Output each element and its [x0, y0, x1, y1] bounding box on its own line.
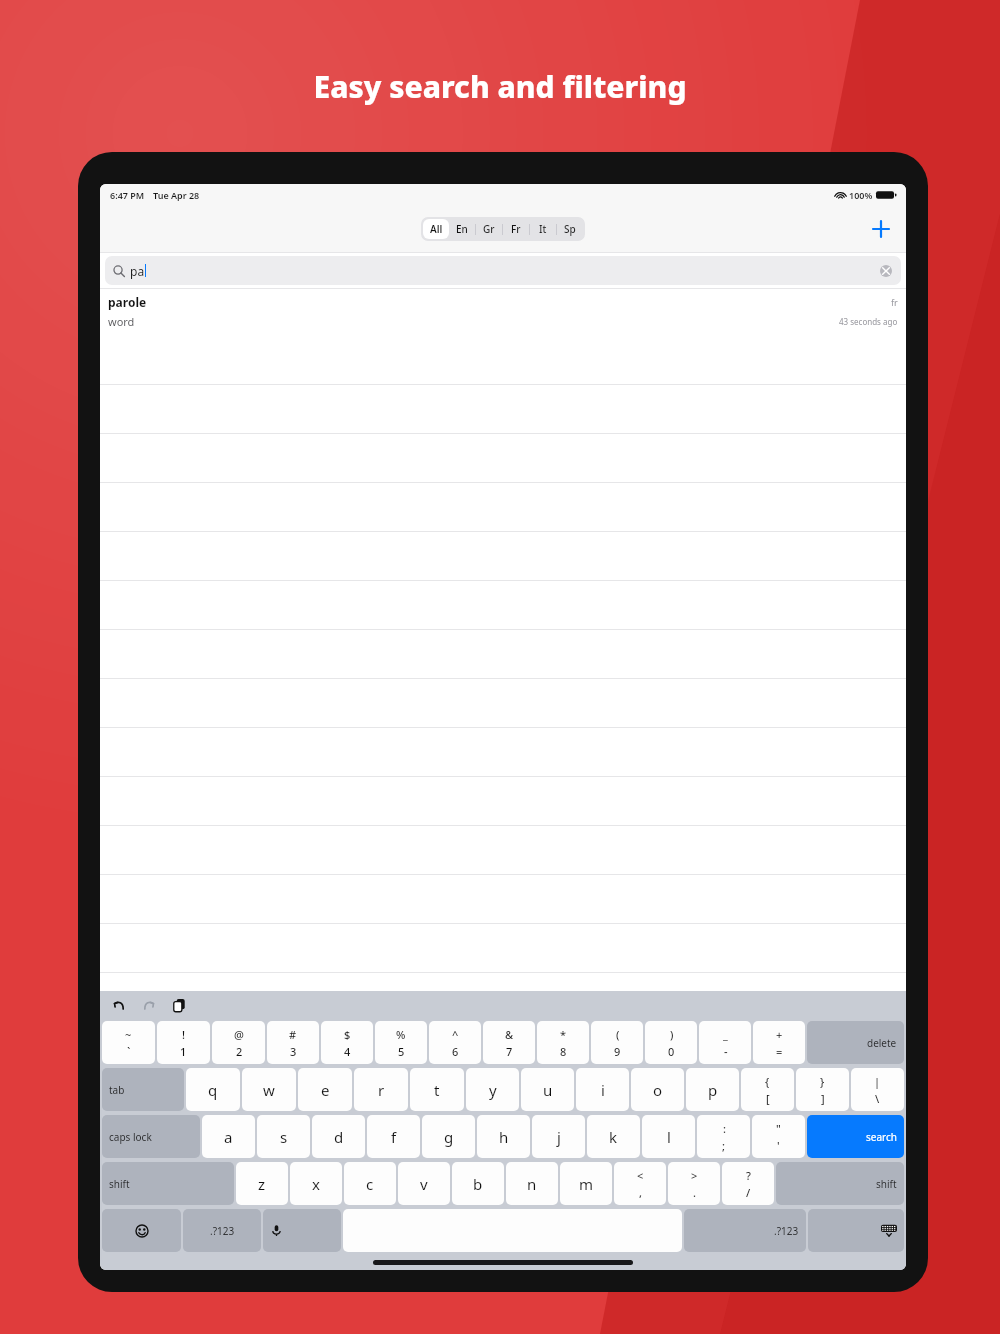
button[interactable]: < — [614, 1162, 666, 1205]
staticText: 3 — [290, 1044, 297, 1059]
button[interactable]: n — [506, 1162, 558, 1205]
button[interactable]: delete — [807, 1021, 904, 1064]
button[interactable]: q — [186, 1068, 240, 1111]
button[interactable]: ( — [591, 1021, 643, 1064]
staticText: search — [866, 1130, 897, 1144]
button[interactable]: Redo — [138, 994, 160, 1016]
staticText: shift — [109, 1177, 130, 1191]
staticText: m — [579, 1174, 594, 1194]
staticText: w — [263, 1080, 275, 1100]
button[interactable]: f — [367, 1115, 420, 1158]
button[interactable]: .?123 — [684, 1209, 806, 1252]
button[interactable]: kbd — [808, 1209, 904, 1252]
staticText: j — [557, 1127, 561, 1147]
button[interactable]: * — [537, 1021, 589, 1064]
button[interactable]: l — [642, 1115, 695, 1158]
button[interactable]: v — [398, 1162, 450, 1205]
button[interactable]: c — [344, 1162, 396, 1205]
staticText: " — [776, 1121, 781, 1136]
button[interactable]: r — [354, 1068, 408, 1111]
staticText: parole — [108, 294, 147, 310]
button[interactable]: shift — [102, 1162, 234, 1205]
button[interactable]: " — [752, 1115, 805, 1158]
button[interactable]: d — [312, 1115, 365, 1158]
button[interactable]: j — [532, 1115, 585, 1158]
button[interactable]: p — [686, 1068, 739, 1111]
button[interactable]: : — [697, 1115, 750, 1158]
staticText: ] — [821, 1091, 825, 1106]
staticText: En — [456, 222, 468, 236]
button[interactable]: > — [668, 1162, 720, 1205]
button[interactable]: parole — [100, 289, 906, 336]
button[interactable]: i — [576, 1068, 629, 1111]
button[interactable]: h — [477, 1115, 530, 1158]
button[interactable]: Add — [864, 212, 898, 246]
staticText: n — [527, 1174, 537, 1194]
button[interactable]: It — [530, 219, 556, 239]
staticText: word — [108, 314, 135, 329]
staticText: & — [505, 1027, 514, 1042]
button[interactable]: search — [807, 1115, 904, 1158]
button[interactable]: e — [298, 1068, 352, 1111]
staticText: 9 — [614, 1044, 621, 1059]
staticText: ~ — [125, 1027, 132, 1042]
button[interactable]: u — [521, 1068, 574, 1111]
button[interactable]: m — [560, 1162, 612, 1205]
button[interactable]: ! — [157, 1021, 210, 1064]
button[interactable]: x — [290, 1162, 342, 1205]
button[interactable]: # — [267, 1021, 319, 1064]
button[interactable]: shift — [776, 1162, 904, 1205]
button[interactable]: { — [741, 1068, 794, 1111]
button[interactable]: Fr — [503, 219, 529, 239]
staticText: tab — [109, 1083, 125, 1097]
button[interactable]: caps lock — [102, 1115, 200, 1158]
staticText: shift — [876, 1177, 897, 1191]
staticText: - — [724, 1044, 728, 1059]
button[interactable]: Sp — [557, 219, 583, 239]
button[interactable]: } — [796, 1068, 849, 1111]
button[interactable]: t — [410, 1068, 464, 1111]
button[interactable]: Gr — [476, 219, 502, 239]
button[interactable]: o — [631, 1068, 684, 1111]
button[interactable]: + — [753, 1021, 805, 1064]
button[interactable]: @ — [212, 1021, 265, 1064]
button[interactable]: Undo — [108, 994, 130, 1016]
button[interactable]: _ — [699, 1021, 751, 1064]
button[interactable]: ? — [722, 1162, 774, 1205]
staticText: > — [691, 1168, 698, 1183]
staticText: e — [321, 1080, 330, 1100]
button[interactable]: $ — [321, 1021, 373, 1064]
staticText: ! — [182, 1027, 186, 1042]
button[interactable]: w — [242, 1068, 296, 1111]
button[interactable]: y — [466, 1068, 519, 1111]
button[interactable]: s — [257, 1115, 310, 1158]
staticText: s — [280, 1127, 288, 1147]
button[interactable]: b — [452, 1162, 504, 1205]
button[interactable]: ~ — [102, 1021, 155, 1064]
button[interactable]: En — [449, 219, 475, 239]
staticText: 43 seconds ago — [839, 316, 898, 327]
staticText: b — [473, 1174, 483, 1194]
staticText: .?123 — [210, 1224, 235, 1238]
button[interactable]: % — [375, 1021, 427, 1064]
button[interactable]: emoji — [102, 1209, 181, 1252]
button[interactable]: mic — [263, 1209, 341, 1252]
button[interactable]: a — [202, 1115, 255, 1158]
button[interactable]: g — [422, 1115, 475, 1158]
staticText: Easy search and filtering — [0, 66, 1000, 107]
button[interactable]: pa — [105, 256, 901, 285]
button[interactable]: .?123 — [183, 1209, 261, 1252]
button[interactable]: z — [236, 1162, 288, 1205]
button[interactable]: tab — [102, 1068, 184, 1111]
button[interactable]: Paste — [168, 994, 190, 1016]
button[interactable]: ^ — [429, 1021, 481, 1064]
button[interactable]: Clear search — [879, 264, 893, 278]
button[interactable]: & — [483, 1021, 535, 1064]
staticText: @ — [234, 1027, 244, 1042]
button[interactable]: | — [851, 1068, 904, 1111]
button[interactable]: k — [587, 1115, 640, 1158]
button[interactable]: All — [423, 219, 449, 239]
button[interactable]: ) — [645, 1021, 697, 1064]
staticText: # — [289, 1027, 297, 1042]
